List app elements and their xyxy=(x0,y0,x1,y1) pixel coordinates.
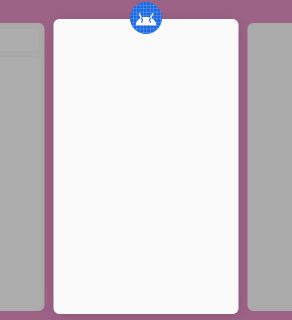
button[interactable] xyxy=(53,19,238,314)
button[interactable]: Profile xyxy=(130,2,162,34)
